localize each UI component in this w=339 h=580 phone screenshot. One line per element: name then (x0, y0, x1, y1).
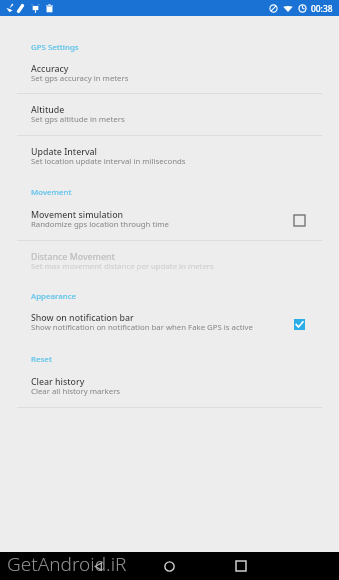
staticText: Set location update interval in miliseco… (31, 156, 186, 167)
staticText: Distance Movement (31, 251, 115, 263)
staticText: Set gps altitude in meters (31, 114, 125, 125)
button[interactable]: Show on notification bar (289, 314, 309, 334)
button[interactable]: Back (86, 554, 110, 578)
button[interactable]: Accuracy (0, 56, 339, 93)
staticText: Show notification on notification bar wh… (31, 322, 253, 333)
button[interactable]: Movement simulation (0, 201, 339, 240)
staticText: Reset (31, 354, 52, 365)
staticText: Accuracy (31, 63, 69, 75)
button[interactable]: Altitude (0, 94, 339, 135)
staticText: GPS Settings (31, 42, 79, 53)
button[interactable]: Update Interval (0, 136, 339, 178)
button[interactable]: Clear history (0, 366, 339, 407)
button[interactable]: Home (157, 554, 181, 578)
staticText: Set gps accuracy in meters (31, 73, 129, 84)
staticText: Show on notification bar (31, 312, 134, 324)
staticText: Movement (31, 187, 72, 198)
staticText: Randomize gps location through time (31, 219, 169, 230)
staticText: Altitude (31, 104, 65, 116)
button[interactable]: Show on notification bar (0, 305, 339, 345)
staticText: Clear all history markers (31, 386, 121, 397)
staticText: Update Interval (31, 146, 97, 158)
staticText: Appearance (31, 291, 77, 302)
staticText: Set max movement distance per update in … (31, 261, 214, 272)
button[interactable]: Movement simulation (289, 210, 309, 230)
staticText: 00:38 (311, 3, 333, 14)
staticText: Movement simulation (31, 209, 124, 221)
staticText: GetAndroid.iR (7, 551, 127, 577)
staticText: Clear history (31, 376, 85, 388)
button[interactable]: Recent apps (229, 554, 253, 578)
button[interactable]: Distance Movement (0, 241, 339, 282)
